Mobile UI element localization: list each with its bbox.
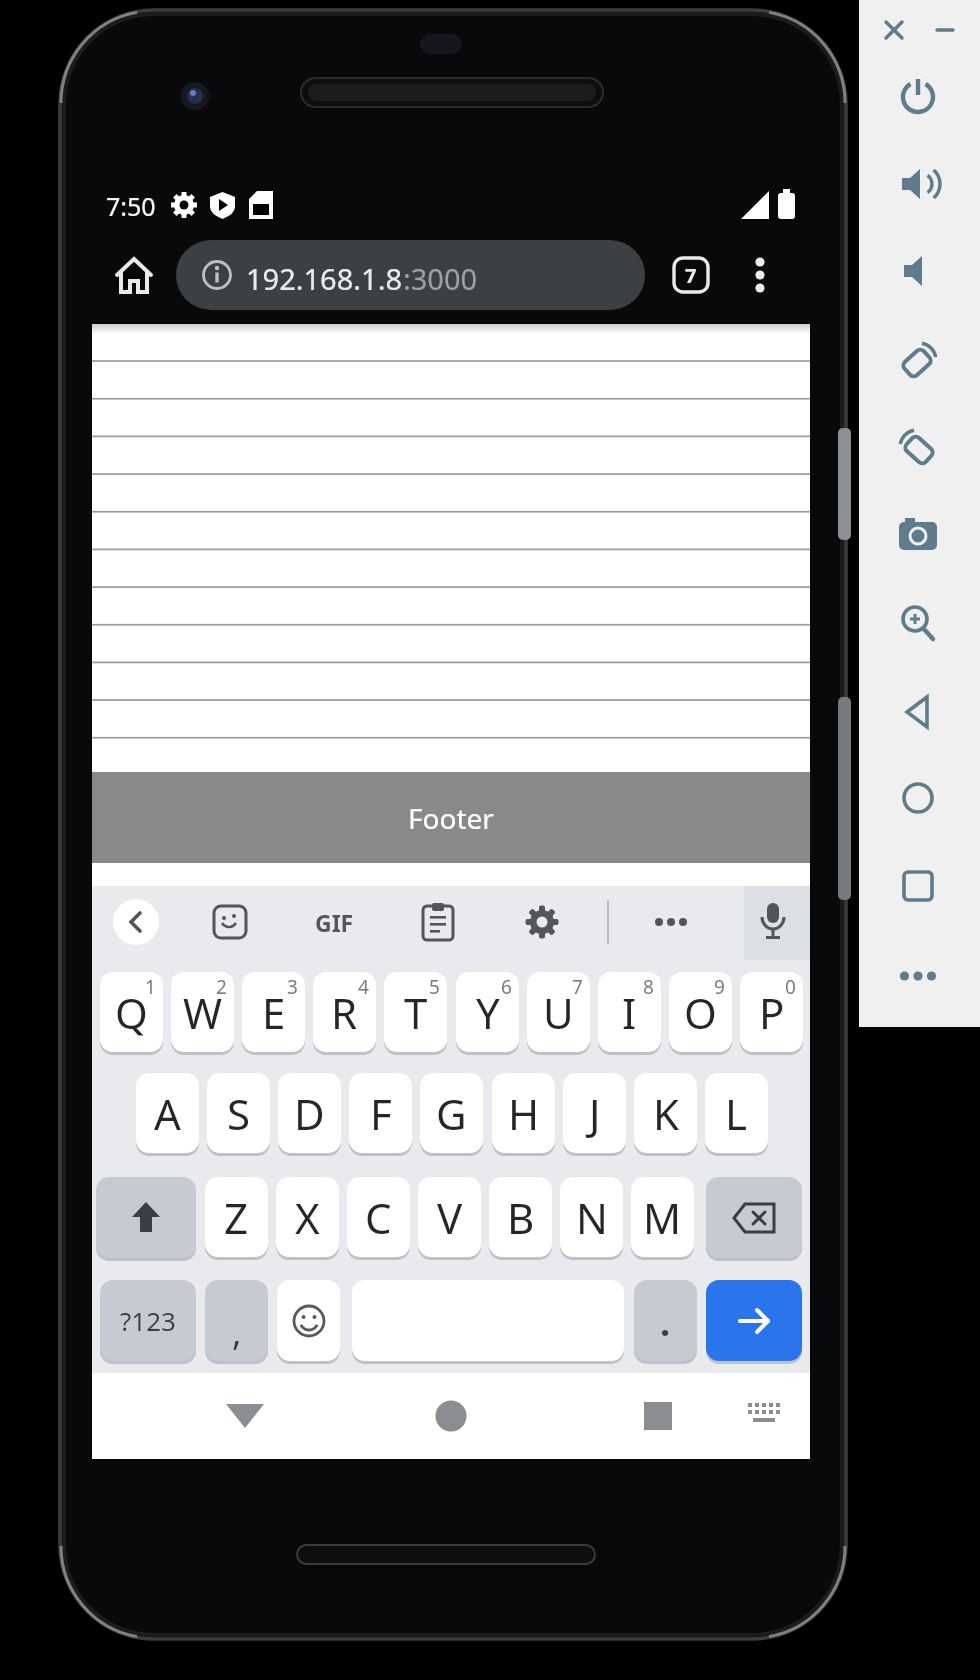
staticText: Y bbox=[476, 984, 500, 1041]
button[interactable]: H bbox=[492, 1073, 555, 1153]
button[interactable]: I bbox=[598, 972, 661, 1052]
button[interactable]: M bbox=[631, 1177, 694, 1257]
staticText: P bbox=[759, 984, 785, 1041]
staticText: 2 bbox=[216, 974, 227, 998]
button[interactable]: Z bbox=[205, 1177, 268, 1257]
staticText: E bbox=[262, 984, 286, 1041]
button[interactable] bbox=[901, 781, 935, 815]
button[interactable]: B bbox=[489, 1177, 552, 1257]
button[interactable]: X bbox=[276, 1177, 339, 1257]
button[interactable]: Footer bbox=[92, 772, 810, 863]
button[interactable]: GIF bbox=[299, 905, 369, 939]
staticText: V bbox=[437, 1189, 463, 1246]
staticText: F bbox=[370, 1085, 392, 1142]
button[interactable] bbox=[756, 901, 790, 943]
button[interactable]: W bbox=[171, 972, 234, 1052]
button[interactable] bbox=[113, 899, 159, 945]
button[interactable] bbox=[422, 903, 454, 941]
button[interactable] bbox=[221, 1392, 269, 1440]
button[interactable]: U bbox=[527, 972, 590, 1052]
button[interactable] bbox=[277, 1280, 340, 1361]
button[interactable]: C bbox=[347, 1177, 410, 1257]
button[interactable]: V bbox=[418, 1177, 481, 1257]
button[interactable] bbox=[898, 428, 938, 468]
staticText: 192.168.1.8 bbox=[246, 259, 403, 298]
button[interactable]: J bbox=[563, 1073, 626, 1153]
staticText: 1 bbox=[145, 974, 156, 998]
button[interactable] bbox=[213, 905, 247, 939]
staticText: ?123 bbox=[120, 1303, 176, 1338]
staticText: Q bbox=[115, 984, 148, 1041]
staticText: K bbox=[653, 1085, 679, 1142]
button[interactable] bbox=[901, 694, 935, 730]
staticText: 4 bbox=[358, 974, 369, 998]
button[interactable]: 7 bbox=[672, 256, 710, 294]
staticText: 9 bbox=[714, 974, 725, 998]
staticText: 8 bbox=[643, 974, 654, 998]
button[interactable] bbox=[746, 250, 774, 300]
button[interactable] bbox=[706, 1177, 802, 1258]
staticText: 7:50 bbox=[106, 189, 156, 219]
button[interactable] bbox=[900, 166, 936, 202]
staticText: 3 bbox=[287, 974, 298, 998]
button[interactable] bbox=[899, 517, 937, 551]
button[interactable]: E bbox=[242, 972, 305, 1052]
button[interactable]: . bbox=[634, 1280, 697, 1361]
button[interactable] bbox=[706, 1280, 802, 1361]
button[interactable]: ?123 bbox=[100, 1280, 196, 1361]
button[interactable] bbox=[899, 604, 937, 642]
button[interactable] bbox=[935, 20, 955, 40]
staticText: :3000 bbox=[403, 259, 478, 298]
button[interactable] bbox=[896, 966, 940, 986]
button[interactable] bbox=[352, 1280, 624, 1361]
button[interactable] bbox=[113, 254, 155, 296]
staticText: 7 bbox=[685, 262, 697, 288]
button[interactable]: D bbox=[278, 1073, 341, 1153]
button[interactable] bbox=[884, 20, 904, 40]
staticText: A bbox=[154, 1085, 181, 1142]
staticText: Z bbox=[224, 1189, 249, 1246]
staticText: 6 bbox=[501, 974, 512, 998]
staticText: G bbox=[436, 1085, 467, 1142]
button[interactable] bbox=[649, 908, 693, 936]
staticText: I bbox=[622, 984, 637, 1041]
staticText: J bbox=[589, 1085, 601, 1142]
staticText: X bbox=[295, 1189, 320, 1246]
staticText: S bbox=[227, 1085, 251, 1142]
button[interactable]: S bbox=[207, 1073, 270, 1153]
button[interactable] bbox=[427, 1392, 475, 1440]
staticText: R bbox=[331, 984, 358, 1041]
button[interactable]: P bbox=[740, 972, 803, 1052]
button[interactable]: A bbox=[136, 1073, 199, 1153]
button[interactable] bbox=[634, 1392, 682, 1440]
button[interactable]: Y bbox=[456, 972, 519, 1052]
button[interactable]: N bbox=[560, 1177, 623, 1257]
button[interactable]: Q bbox=[100, 972, 163, 1052]
button[interactable] bbox=[902, 870, 934, 902]
button[interactable] bbox=[525, 905, 559, 939]
staticText: O bbox=[684, 984, 717, 1041]
button[interactable] bbox=[900, 79, 936, 115]
button[interactable] bbox=[898, 341, 938, 381]
staticText: M bbox=[643, 1189, 682, 1246]
staticText: W bbox=[183, 984, 223, 1041]
button[interactable] bbox=[900, 253, 936, 289]
button[interactable]: 192.168.1.8 bbox=[176, 240, 645, 310]
staticText: U bbox=[543, 984, 574, 1041]
staticText: H bbox=[508, 1085, 540, 1142]
button[interactable]: L bbox=[705, 1073, 768, 1153]
staticText: . bbox=[660, 1298, 671, 1347]
staticText: Footer bbox=[408, 799, 494, 837]
staticText: 7 bbox=[572, 974, 583, 998]
button[interactable]: , bbox=[205, 1280, 268, 1361]
button[interactable]: G bbox=[420, 1073, 483, 1153]
staticText: N bbox=[576, 1189, 608, 1246]
button[interactable]: R bbox=[313, 972, 376, 1052]
button[interactable] bbox=[96, 1177, 196, 1258]
button[interactable]: T bbox=[384, 972, 447, 1052]
button[interactable] bbox=[744, 1398, 784, 1434]
staticText: GIF bbox=[315, 907, 354, 938]
button[interactable]: O bbox=[669, 972, 732, 1052]
button[interactable]: K bbox=[634, 1073, 697, 1153]
button[interactable]: F bbox=[349, 1073, 412, 1153]
